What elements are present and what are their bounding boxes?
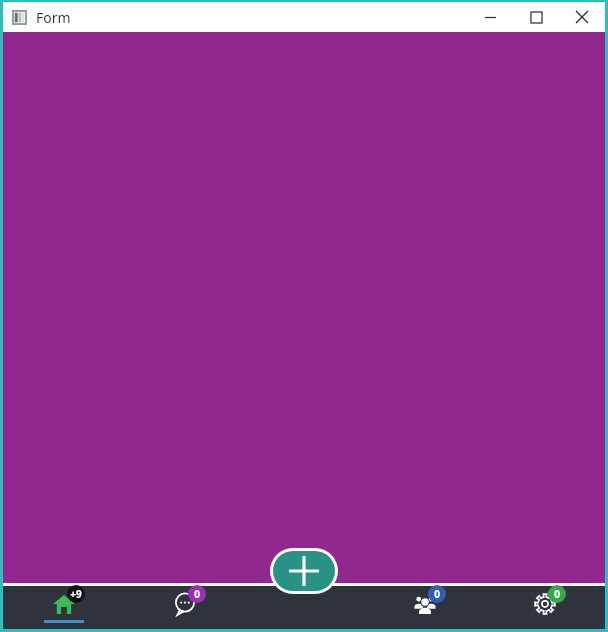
staticText: 0 [434, 587, 440, 601]
staticText: +9 [70, 587, 82, 601]
button[interactable]: Minimize [467, 2, 513, 32]
button[interactable]: Groups [365, 586, 485, 629]
button[interactable]: Home [3, 586, 124, 629]
staticText: 0 [554, 587, 560, 601]
staticText: 0 [194, 587, 200, 601]
button[interactable]: Messages [124, 586, 245, 629]
staticText: Form [36, 8, 71, 27]
button[interactable]: Close [559, 2, 605, 32]
button[interactable]: Settings [485, 586, 605, 629]
button[interactable]: Add [273, 551, 335, 591]
button[interactable]: Maximize [513, 2, 559, 32]
